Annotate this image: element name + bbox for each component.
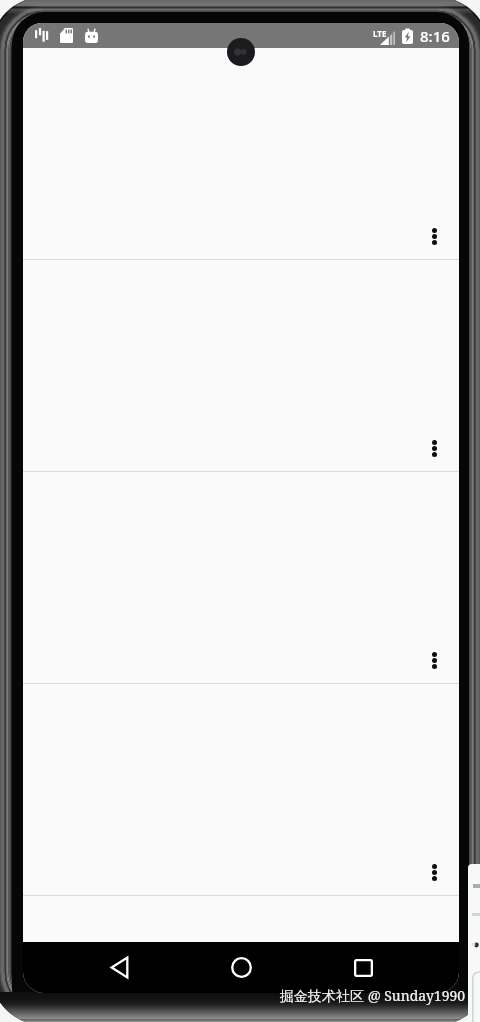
button[interactable]: Recent apps — [302, 942, 424, 993]
button[interactable]: Home — [180, 942, 302, 993]
button[interactable]: More options — [419, 645, 449, 675]
staticText: 掘金技术社区 @ Sunday1990 — [280, 986, 466, 1005]
button[interactable]: More options — [23, 260, 459, 471]
button[interactable]: More options — [419, 857, 449, 887]
staticText: LTE — [373, 28, 387, 39]
staticText: 8:16 — [420, 26, 450, 46]
button[interactable]: More options — [419, 433, 449, 463]
button[interactable]: More options — [23, 684, 459, 895]
button[interactable]: More options — [23, 472, 459, 683]
button[interactable]: More options — [23, 48, 459, 259]
button[interactable]: More options — [419, 221, 449, 251]
button[interactable]: Back — [58, 942, 180, 993]
